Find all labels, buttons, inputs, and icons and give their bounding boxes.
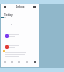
button[interactable]: Team standup [1,42,39,52]
staticText: Today [4,13,13,17]
button[interactable]: Tab 3 [15,58,23,66]
button[interactable]: Menu [2,4,7,9]
button[interactable]: Tab 1 [1,58,8,66]
button[interactable]: Tab 5 [31,58,39,66]
staticText: Inbox [16,5,25,9]
button[interactable]: Tab 4 [23,58,31,66]
button[interactable]: More options [32,4,37,9]
button[interactable]: Tab 2 [8,58,15,66]
button[interactable]: Design review [1,31,39,41]
